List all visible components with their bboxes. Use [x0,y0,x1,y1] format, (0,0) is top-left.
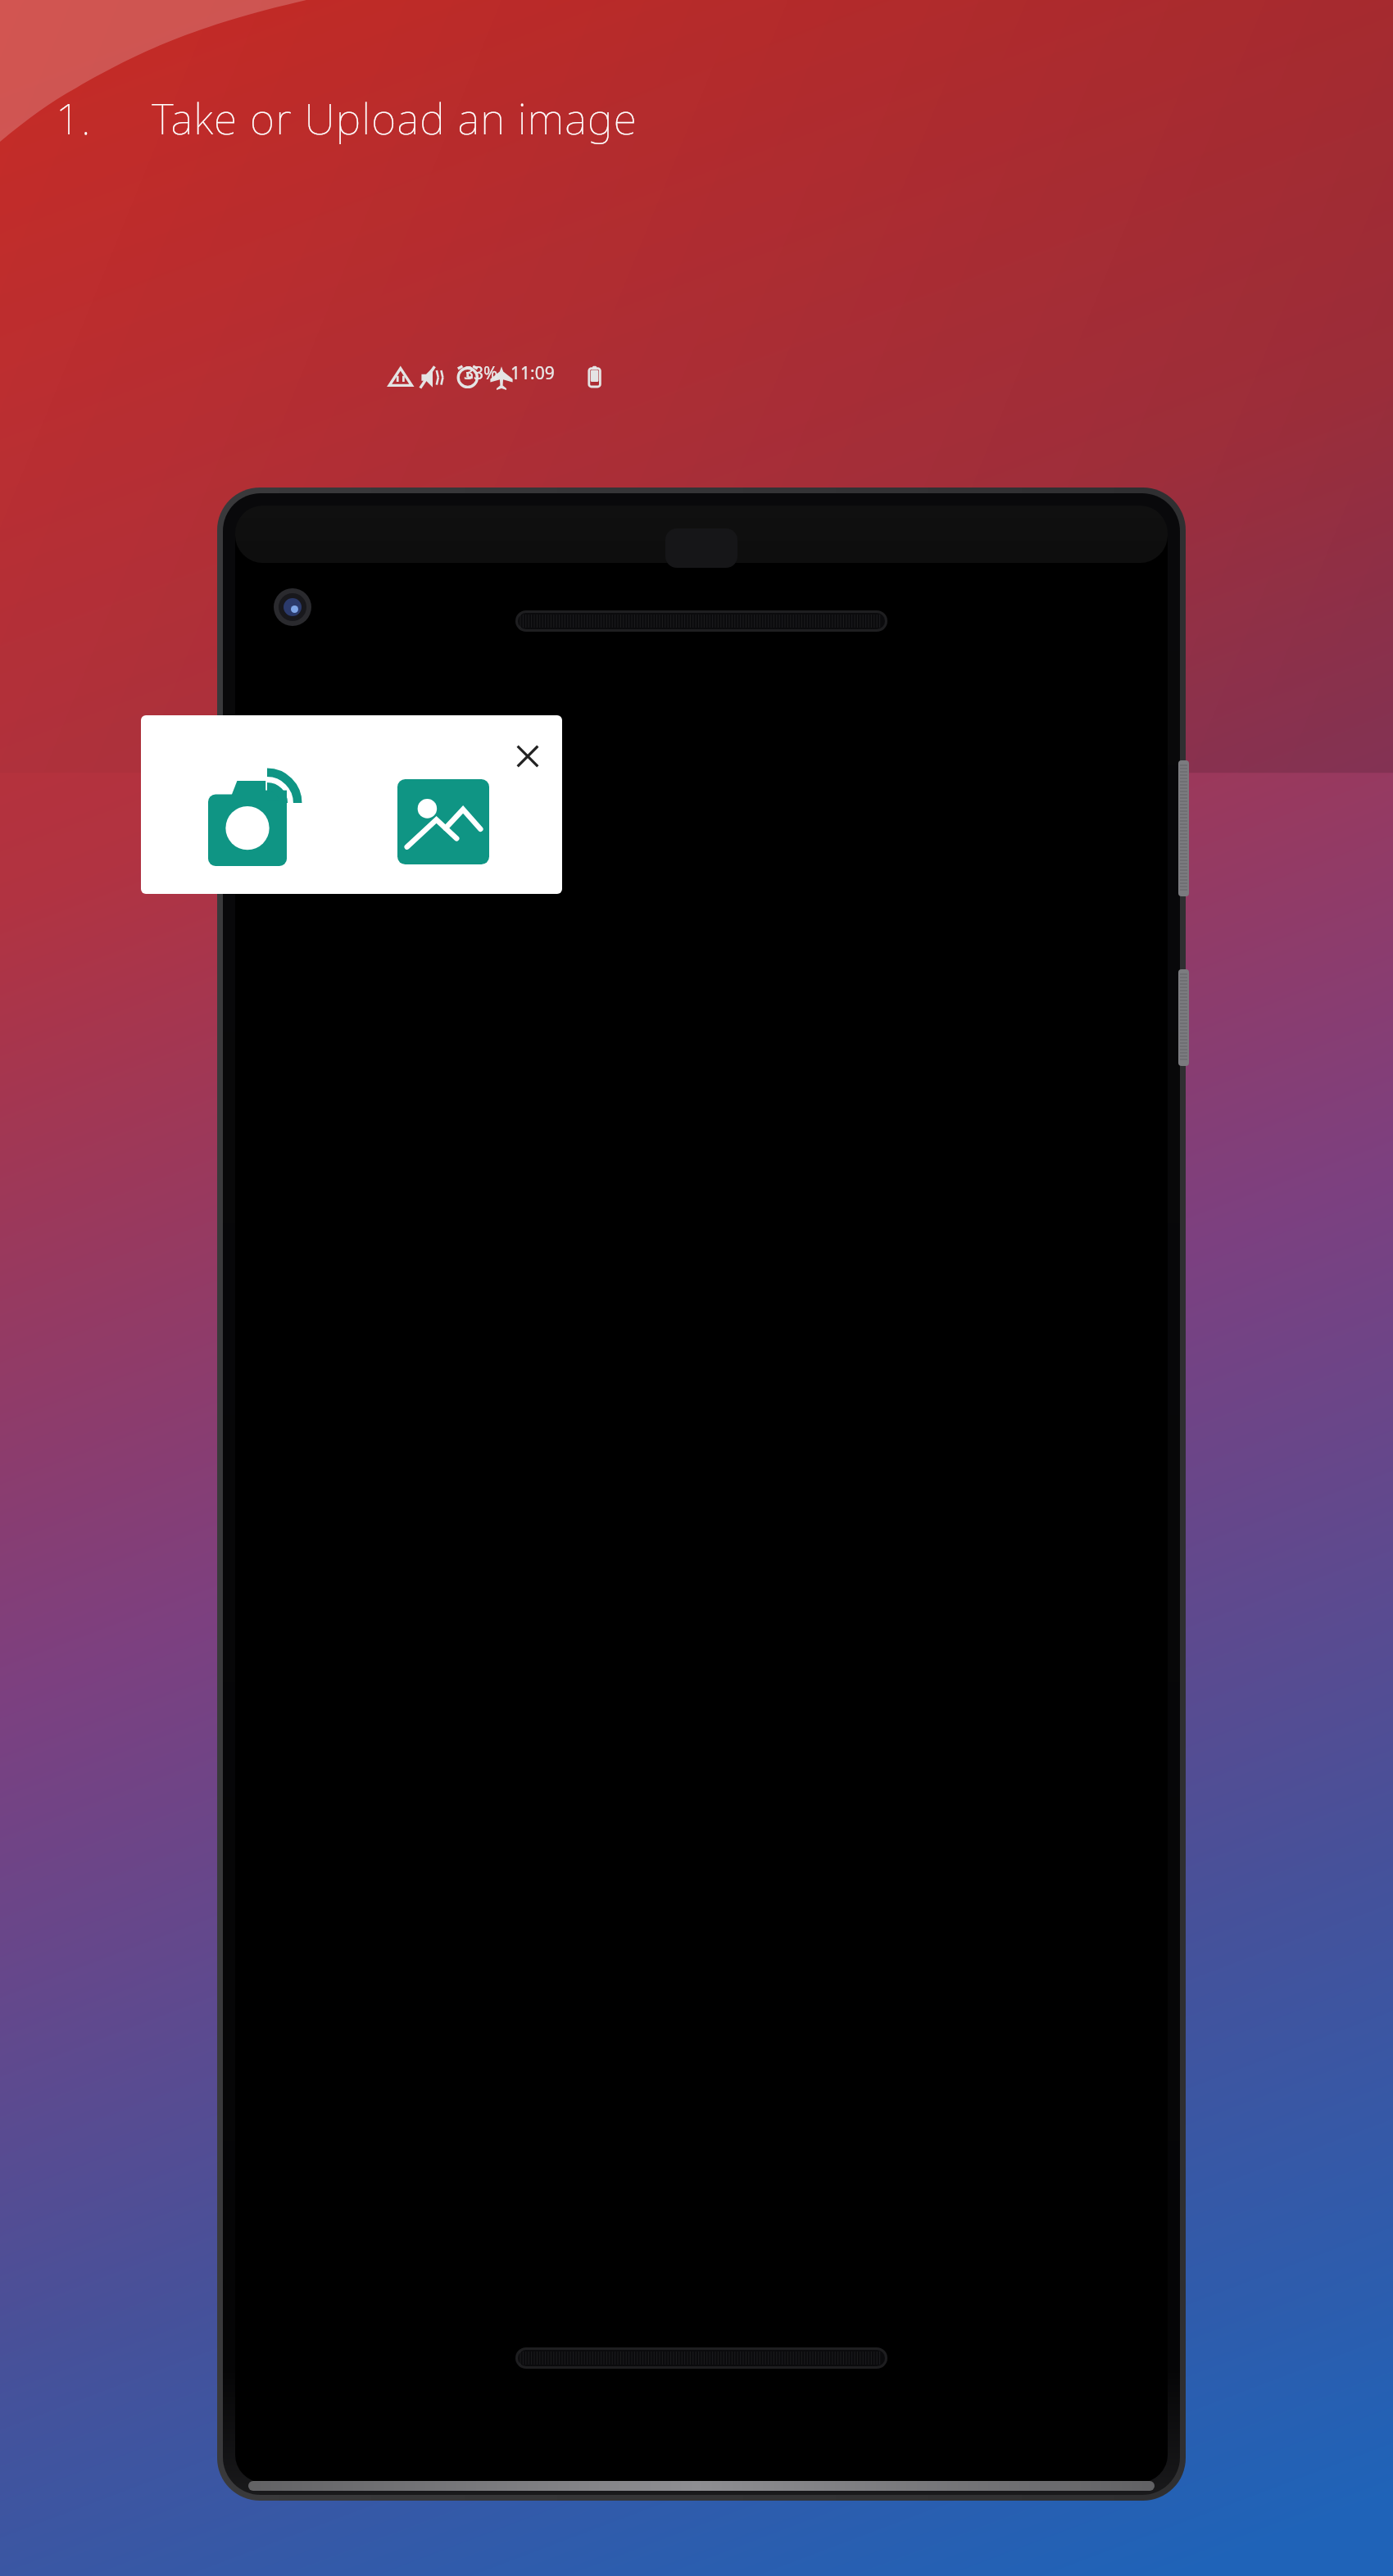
button[interactable]: Upload an image [397,779,489,864]
button[interactable]: Close [505,733,551,779]
staticText: 1. Take or Upload an image [31,88,662,154]
button[interactable]: Take a photo [208,776,306,866]
staticText: 11:09 [510,361,555,385]
staticText: 33% [464,361,498,385]
